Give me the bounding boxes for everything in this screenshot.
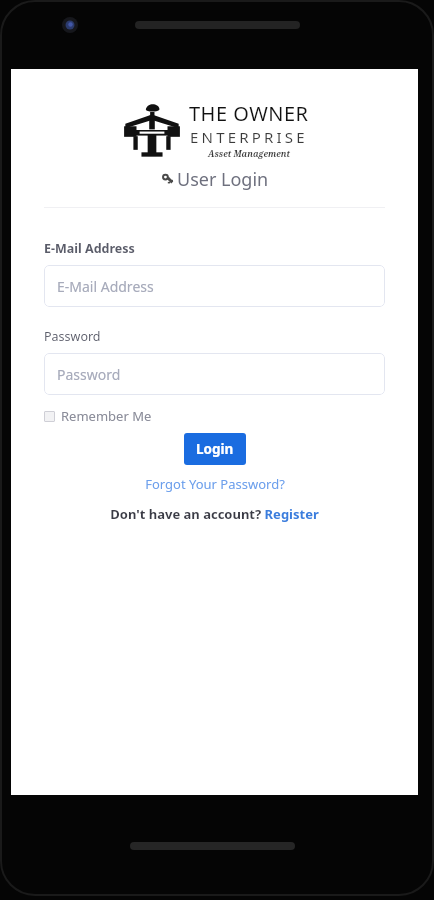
staticText: E-Mail Address <box>57 277 154 296</box>
staticText: ENTERPRISE <box>190 127 308 147</box>
button[interactable]: Login <box>184 433 246 465</box>
button[interactable]: Don't have an account? Register <box>104 503 325 525</box>
staticText: User Login <box>177 167 269 192</box>
staticText: THE OWNER <box>189 100 309 127</box>
staticText: Forgot Your Password? <box>145 475 285 493</box>
button[interactable]: Remember Me <box>44 405 152 427</box>
staticText: Don't have an account? Register <box>110 505 319 523</box>
button[interactable]: E-Mail Address <box>44 265 385 307</box>
staticText: Remember Me <box>61 407 152 425</box>
button[interactable]: Forgot Your Password? <box>139 473 291 495</box>
staticText: Password <box>57 365 121 384</box>
staticText: E-Mail Address <box>44 240 135 257</box>
staticText: Login <box>196 440 234 458</box>
staticText: Password <box>44 328 101 345</box>
button[interactable]: Password <box>44 353 385 395</box>
staticText: Asset Management <box>208 148 291 160</box>
